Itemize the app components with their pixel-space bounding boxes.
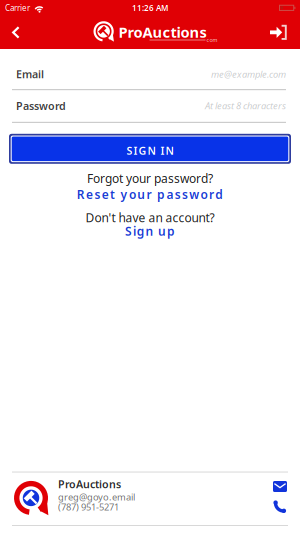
button[interactable]: Forgot your password?: [77, 170, 223, 202]
staticText: Forgot your password?: [87, 170, 213, 186]
staticText: greg@goyo.email: [58, 491, 135, 503]
staticText: Email: [16, 67, 44, 81]
staticText: At least 8 characters: [205, 100, 286, 112]
staticText: ProAuctions: [58, 477, 121, 491]
button[interactable]: Password: [0, 90, 300, 123]
button[interactable]: Don't have an account?: [85, 210, 214, 242]
staticText: Carrier: [5, 3, 30, 13]
staticText: Reset your password: [77, 186, 223, 202]
staticText: (787) 951-5271: [58, 501, 119, 513]
button[interactable]: [0, 26, 20, 39]
button[interactable]: [270, 25, 300, 40]
staticText: com: [206, 36, 217, 44]
staticText: ProAuctions: [118, 22, 206, 42]
button[interactable]: [273, 499, 287, 513]
staticText: Don't have an account?: [85, 210, 214, 226]
staticText: S I G N I N: [126, 143, 173, 158]
staticText: Sign up: [125, 223, 175, 239]
staticText: Password: [16, 99, 66, 113]
button[interactable]: S I G N I N: [0, 134, 300, 164]
staticText: me@example.com: [211, 68, 286, 80]
button[interactable]: [273, 480, 287, 492]
button[interactable]: Email: [0, 49, 300, 90]
staticText: 11:26 AM: [132, 3, 168, 13]
